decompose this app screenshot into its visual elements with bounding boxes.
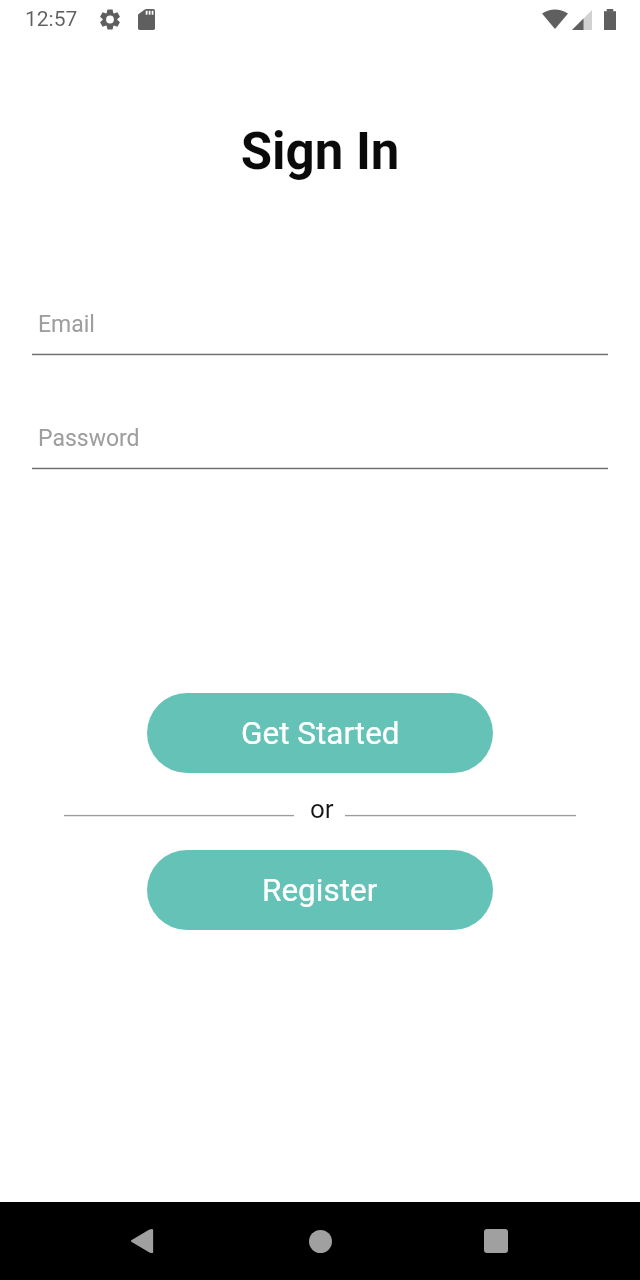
button[interactable]: Recent apps [466, 1211, 526, 1271]
staticText: Get Started [241, 715, 400, 752]
staticText: Password [38, 425, 140, 452]
button[interactable]: Get Started [147, 693, 493, 773]
other: SD card [138, 9, 155, 30]
staticText: or [310, 794, 334, 824]
staticText: Email [38, 311, 95, 338]
button[interactable]: Register [147, 850, 493, 930]
staticText: Register [262, 872, 378, 909]
other: Battery [604, 9, 616, 30]
staticText: 12:57 [25, 7, 78, 32]
button[interactable]: Back [112, 1211, 172, 1271]
button[interactable]: Password [32, 413, 608, 470]
button[interactable]: Home [290, 1211, 350, 1271]
staticText: Sign In [0, 122, 640, 182]
other: Mobile signal [572, 10, 592, 30]
button[interactable]: Email [32, 299, 608, 356]
other: Wi-Fi [542, 9, 568, 29]
other: Settings [100, 9, 120, 30]
